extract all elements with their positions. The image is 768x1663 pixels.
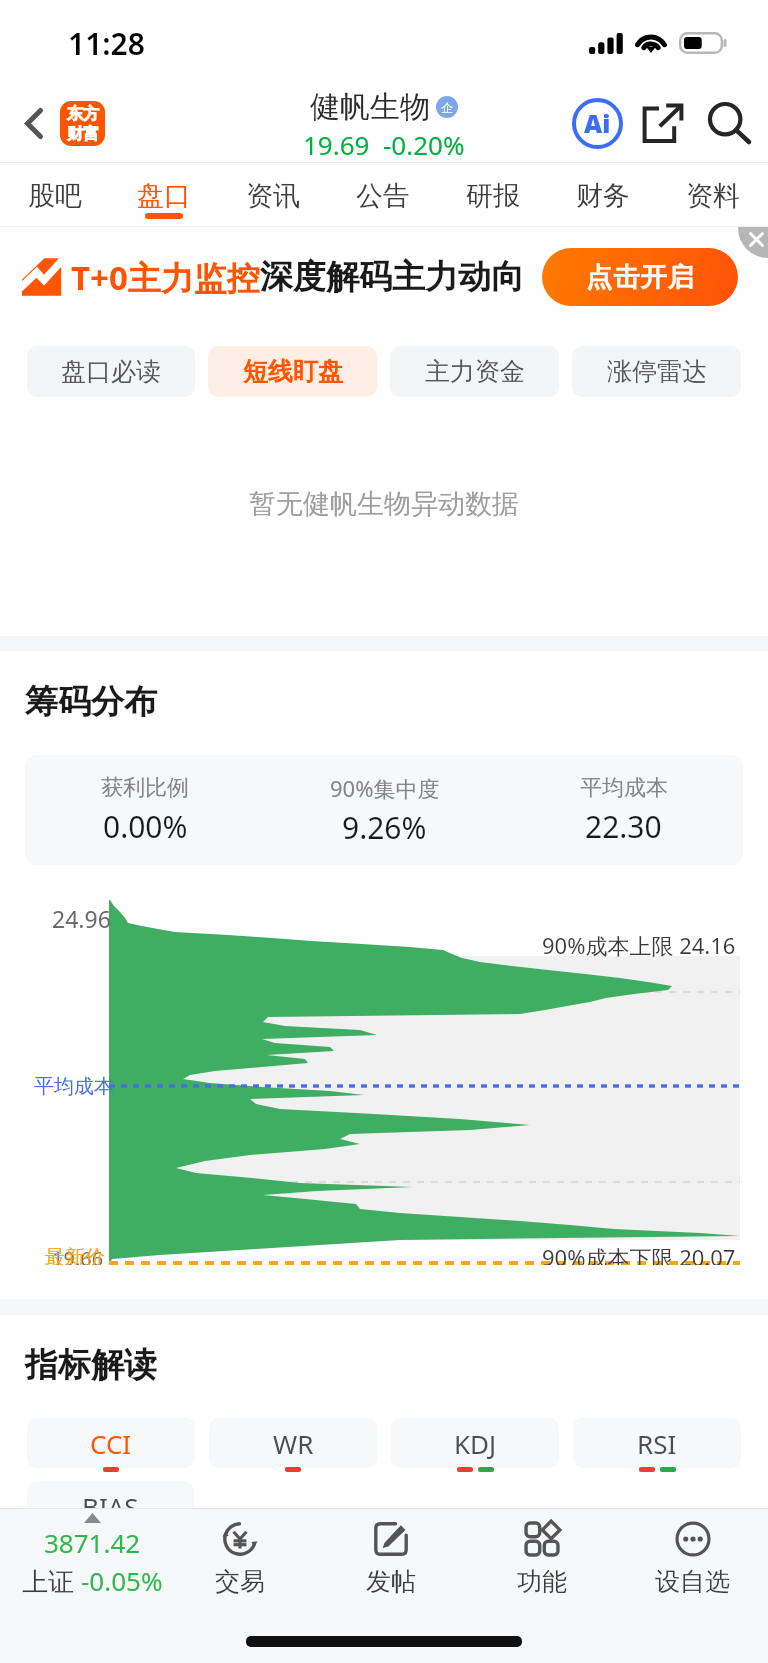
staticText: 财务: [576, 179, 630, 213]
button[interactable]: CCI: [27, 1418, 195, 1468]
button[interactable]: WR: [209, 1418, 377, 1468]
button[interactable]: RSI: [573, 1418, 741, 1468]
staticText: 90%成本上限 24.16: [542, 930, 736, 960]
button[interactable]: 短线盯盘: [208, 346, 377, 397]
staticText: BIAS: [82, 1489, 139, 1524]
staticText: 点击开启: [586, 261, 695, 294]
button[interactable]: 返回: [8, 91, 60, 155]
staticText: 最新价: [45, 1245, 105, 1265]
staticText: 深度解码主力动向: [260, 256, 524, 298]
staticText: 主力资金: [425, 356, 525, 387]
button[interactable]: 财务: [548, 163, 658, 227]
staticText: 财富: [67, 124, 99, 144]
staticText: 设自选: [655, 1566, 730, 1597]
button[interactable]: 涨停雷达: [572, 346, 741, 397]
button[interactable]: 研报: [438, 163, 548, 227]
button[interactable]: 资讯: [218, 163, 328, 227]
staticText: 19.66: [52, 1245, 104, 1265]
staticText: 短线盯盘: [243, 356, 343, 387]
button[interactable]: 分享: [630, 90, 696, 156]
button[interactable]: 关闭: [737, 227, 768, 259]
staticText: Ai: [584, 106, 611, 140]
staticText: 获利比例: [101, 774, 189, 802]
button[interactable]: KDJ: [391, 1418, 559, 1468]
staticText: -0.05%: [81, 1563, 163, 1598]
staticText: 筹码分布: [25, 681, 157, 723]
staticText: WR: [273, 1426, 314, 1461]
staticText: 11:28: [68, 23, 145, 64]
button[interactable]: 设自选: [617, 1508, 768, 1615]
button[interactable]: 功能: [466, 1508, 617, 1615]
staticText: 0.00%: [103, 806, 188, 847]
staticText: 交易: [215, 1566, 265, 1597]
button[interactable]: 主力资金: [390, 346, 559, 397]
staticText: 涨停雷达: [607, 356, 707, 387]
staticText: 资讯: [246, 179, 300, 213]
button[interactable]: 盘口: [109, 163, 218, 227]
staticText: 90%成本下限 20.07: [542, 1242, 736, 1265]
staticText: CCI: [90, 1426, 132, 1461]
button[interactable]: 公告: [328, 163, 438, 227]
staticText: 资料: [686, 179, 740, 213]
staticText: 暂无健帆生物异动数据: [249, 487, 519, 521]
button[interactable]: 发帖: [315, 1508, 466, 1615]
staticText: 研报: [466, 179, 520, 213]
button[interactable]: 资料: [658, 163, 768, 227]
button[interactable]: 股吧: [0, 163, 109, 227]
staticText: 公告: [356, 179, 410, 213]
staticText: 健帆生物: [310, 88, 430, 126]
staticText: 盘口必读: [61, 356, 161, 387]
staticText: 9.26%: [342, 807, 427, 848]
staticText: 盘口: [137, 179, 191, 213]
staticText: 90%集中度: [330, 773, 440, 803]
staticText: 3871.42: [44, 1525, 141, 1560]
staticText: 平均成本: [580, 774, 668, 802]
staticText: 指标解读: [25, 1344, 157, 1386]
staticText: 19.69 -0.20%: [303, 127, 465, 162]
staticText: 股吧: [28, 179, 82, 213]
staticText: 24.96: [52, 903, 111, 934]
button[interactable]: BIAS: [27, 1481, 194, 1531]
button[interactable]: 盘口必读: [27, 346, 195, 397]
staticText: 平均成本: [34, 1074, 114, 1099]
button[interactable]: 点击开启: [542, 248, 738, 306]
staticText: T+0主力监控: [71, 255, 260, 300]
button[interactable]: 搜索: [696, 90, 762, 156]
staticText: 企: [441, 100, 453, 115]
staticText: 东方: [67, 104, 99, 124]
button[interactable]: 3871.42: [0, 1508, 164, 1615]
staticText: KDJ: [454, 1426, 497, 1461]
staticText: 上证: [22, 1563, 81, 1599]
button[interactable]: 东方财富: [60, 101, 105, 146]
staticText: 发帖: [366, 1566, 416, 1597]
button[interactable]: AI助手: [564, 90, 630, 156]
staticText: RSI: [637, 1426, 677, 1461]
button[interactable]: 交易: [164, 1508, 315, 1615]
staticText: 功能: [517, 1566, 567, 1597]
staticText: 22.30: [585, 806, 662, 847]
